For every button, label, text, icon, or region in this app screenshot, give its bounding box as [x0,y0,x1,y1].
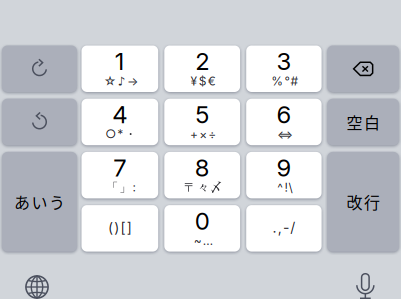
staticText: 2 [195,47,209,76]
button[interactable]: 5 [164,99,240,145]
staticText: ☆♪→ [104,74,138,88]
button[interactable]: 6 [246,99,322,145]
button[interactable]: 0 [164,205,240,252]
staticText: +×÷ [190,127,216,141]
button[interactable]: 1 [81,45,158,92]
staticText: ~… [194,233,213,248]
staticText: ○*・ [105,127,136,142]
staticText: .,-/ [272,219,295,236]
button[interactable]: 2 [164,45,240,92]
staticText: 5 [195,100,209,129]
staticText: ¥$€ [191,74,216,88]
button[interactable]: Next keyboard [15,267,59,299]
staticText: %°# [271,74,298,88]
staticText: 3 [276,47,291,76]
button[interactable]: 空白 [327,99,399,145]
staticText: 改行 [346,190,380,213]
staticText: 1 [115,47,125,76]
staticText: 6 [276,100,291,129]
button[interactable]: 4 [81,99,158,145]
button[interactable]: 9 [246,152,322,198]
button[interactable]: 8 [164,152,240,198]
staticText: ^!\ [277,180,292,195]
staticText: 0 [195,206,210,235]
staticText: 9 [276,153,291,182]
staticText: 4 [112,100,127,129]
staticText: 8 [195,153,210,182]
button[interactable]: .,-/ [246,205,322,252]
button[interactable]: 3 [246,45,322,92]
button[interactable]: Redo [2,45,77,92]
staticText: 「」: [106,180,135,195]
button[interactable]: あいう [2,152,77,252]
staticText: 空白 [346,110,380,134]
staticText: 〒々〆 [184,180,222,195]
button[interactable]: ()[] [81,205,158,252]
button[interactable]: Undo [2,99,77,145]
staticText: 7 [113,153,126,182]
staticText: ()[] [108,219,132,236]
staticText: あいう [14,190,65,213]
button[interactable]: Delete [327,45,399,92]
staticText: <=> [277,127,293,141]
button[interactable]: Dictation [343,267,387,299]
button[interactable]: 改行 [327,152,399,252]
button[interactable]: 7 [81,152,158,198]
